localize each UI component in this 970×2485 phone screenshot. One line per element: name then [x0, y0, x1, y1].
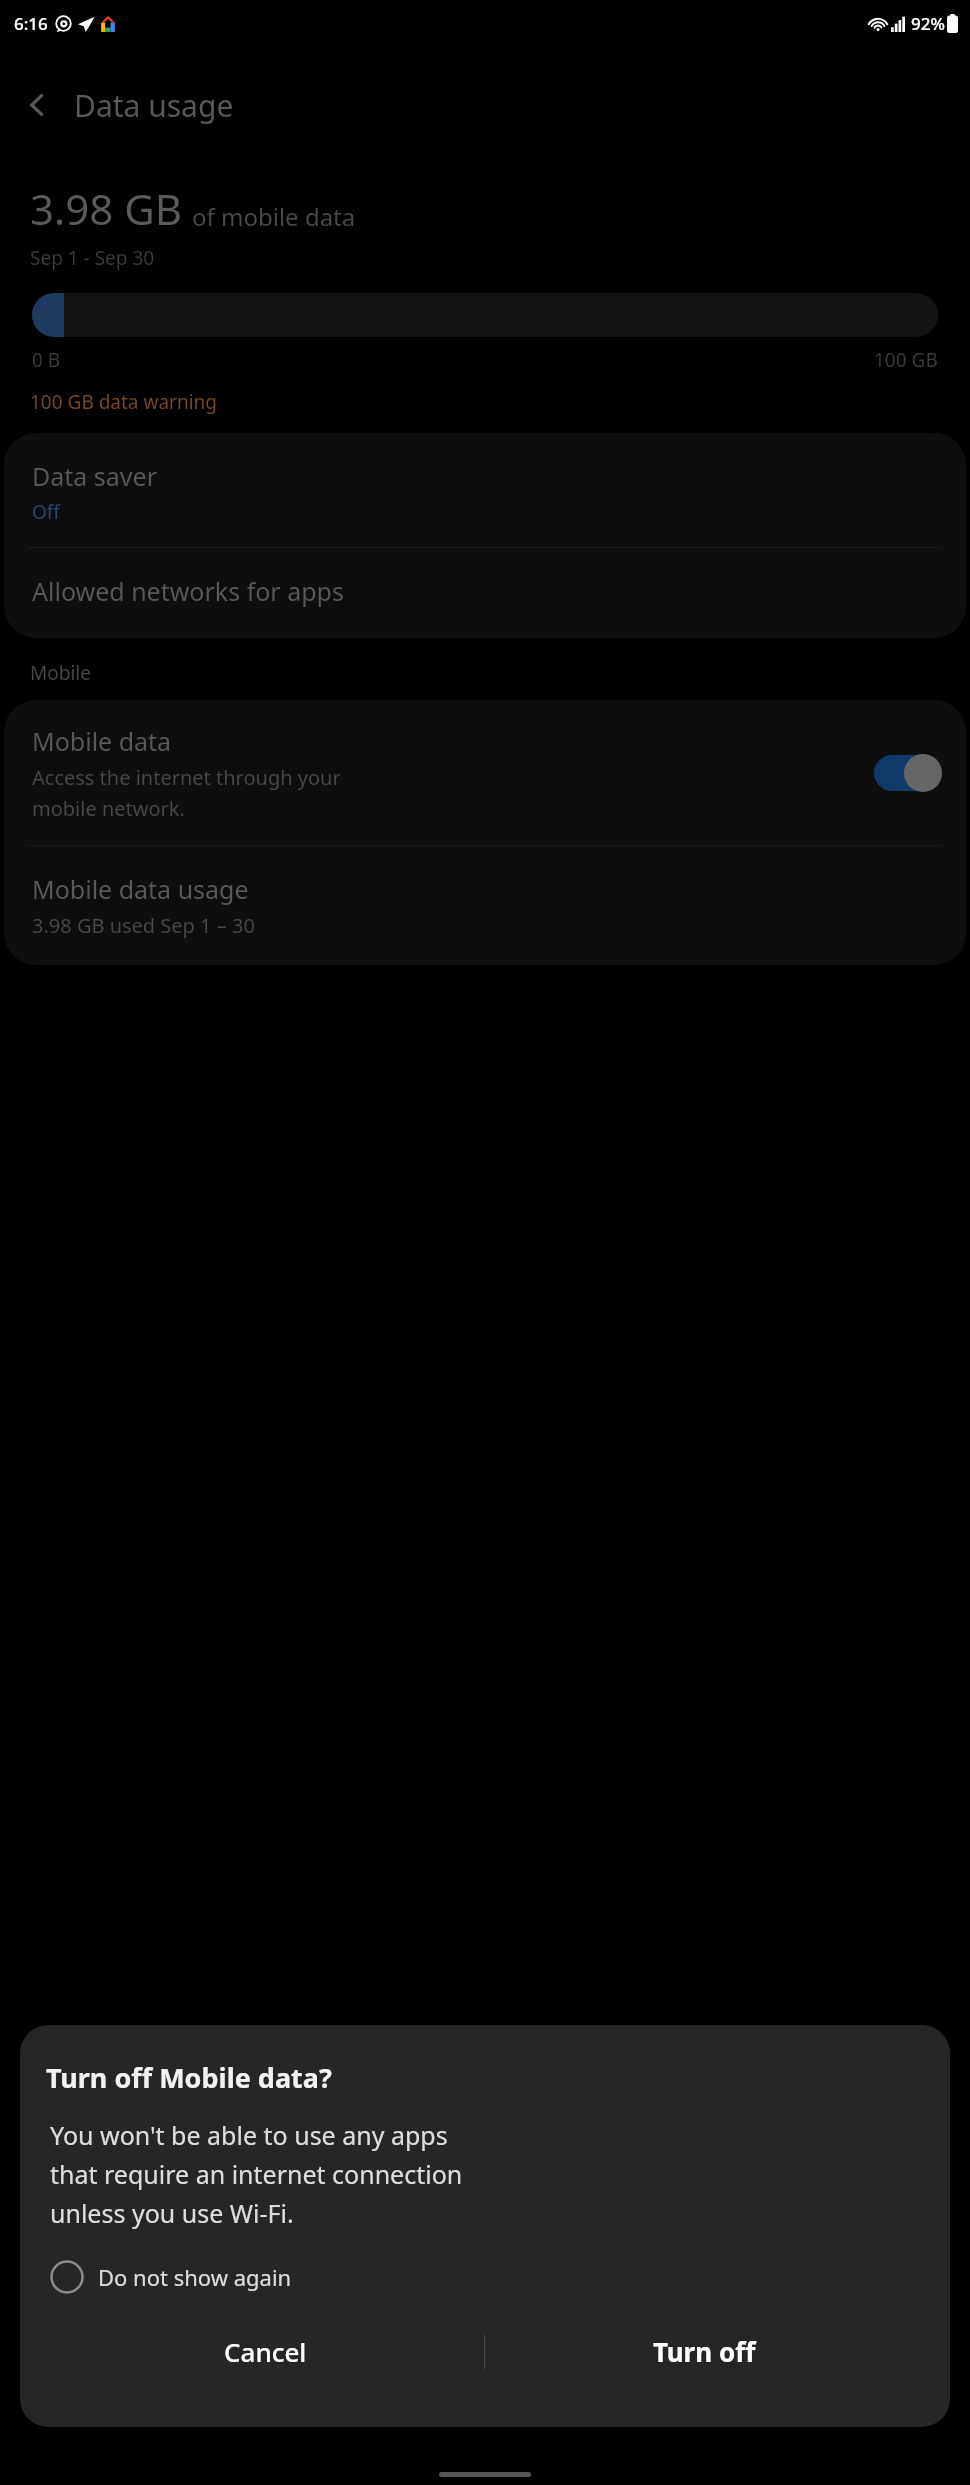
staticText: 92%	[911, 12, 945, 35]
staticText: Sep 1 - Sep 30	[30, 245, 155, 271]
button[interactable]: Cancel	[46, 2322, 484, 2381]
staticText: 3.98 GB used Sep 1 – 30	[32, 912, 255, 939]
staticText: of mobile data	[192, 200, 356, 233]
button[interactable]: Do not show again	[46, 2256, 300, 2298]
staticText: Mobile data	[32, 724, 172, 758]
staticText: Access the internet through your mobile …	[32, 764, 341, 821]
button[interactable]: Turn off	[485, 2322, 924, 2381]
staticText: Mobile data usage	[32, 872, 249, 906]
staticText: Off	[32, 499, 60, 525]
button[interactable]: Back	[14, 82, 60, 128]
staticText: 100 GB	[874, 347, 938, 373]
staticText: Mobile	[30, 660, 91, 686]
button[interactable]: Data saver	[4, 433, 966, 547]
staticText: 3.98 GB	[30, 180, 183, 237]
staticText: Allowed networks for apps	[32, 574, 344, 608]
staticText: Data usage	[74, 85, 234, 126]
staticText: Turn off Mobile data?	[46, 2059, 332, 2096]
button[interactable]: Allowed networks for apps	[4, 548, 966, 638]
staticText: 0 B	[32, 347, 61, 373]
staticText: Turn off	[653, 2334, 756, 2369]
button[interactable]: Mobile data	[4, 700, 966, 845]
staticText: Do not show again	[98, 2262, 292, 2292]
staticText: Data saver	[32, 459, 157, 493]
staticText: 6:16	[14, 12, 48, 35]
button[interactable]: Mobile data toggle	[874, 754, 942, 792]
button[interactable]: Mobile data usage	[4, 846, 966, 965]
staticText: You won't be able to use any apps that r…	[50, 2118, 463, 2230]
staticText: 100 GB data warning	[30, 389, 217, 415]
staticText: Cancel	[224, 2334, 307, 2369]
